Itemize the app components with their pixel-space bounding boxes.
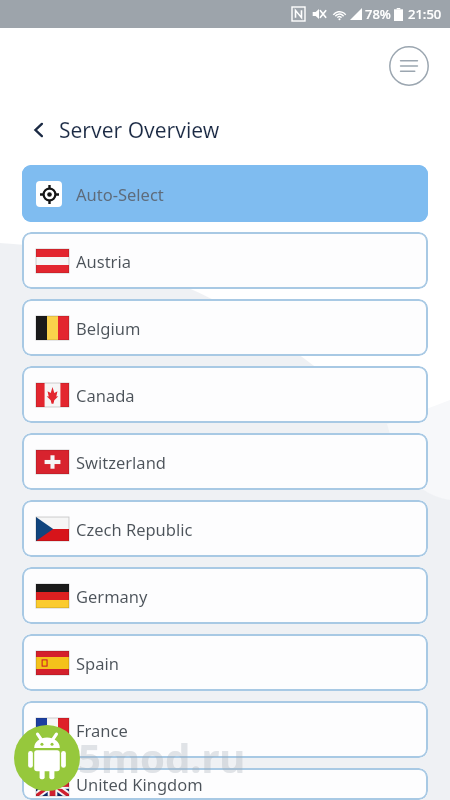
staticText: Server Overview bbox=[59, 116, 220, 145]
staticText: Germany bbox=[76, 585, 148, 607]
staticText: Auto-Select bbox=[76, 183, 164, 205]
staticText: Canada bbox=[76, 384, 135, 406]
staticText: Spain bbox=[76, 652, 119, 674]
button[interactable]: Germany bbox=[22, 567, 428, 624]
button[interactable]: France bbox=[22, 701, 428, 758]
button[interactable]: Back bbox=[26, 117, 52, 143]
staticText: France bbox=[76, 719, 128, 741]
staticText: Switzerland bbox=[76, 451, 166, 473]
button[interactable]: Canada bbox=[22, 366, 428, 423]
staticText: Belgium bbox=[76, 317, 141, 339]
button[interactable]: Austria bbox=[22, 232, 428, 289]
button[interactable]: Switzerland bbox=[22, 433, 428, 490]
staticText: 21:50 bbox=[408, 5, 442, 23]
staticText: Austria bbox=[76, 250, 131, 272]
button[interactable]: Auto-Select bbox=[22, 165, 428, 222]
staticText: Czech Republic bbox=[76, 518, 193, 540]
button[interactable]: Menu bbox=[386, 43, 432, 89]
staticText: United Kingdom bbox=[76, 773, 203, 795]
button[interactable]: Czech Republic bbox=[22, 500, 428, 557]
button[interactable]: United Kingdom bbox=[22, 768, 428, 800]
button[interactable]: Spain bbox=[22, 634, 428, 691]
button[interactable]: Belgium bbox=[22, 299, 428, 356]
staticText: 78% bbox=[365, 5, 391, 23]
staticText: 5mod.ru bbox=[78, 730, 246, 784]
